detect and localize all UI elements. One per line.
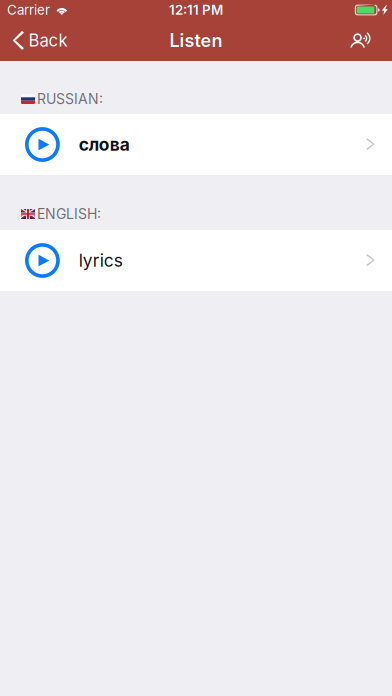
staticText: RUSSIAN: — [37, 90, 103, 107]
button[interactable]: Back — [0, 20, 77, 61]
button[interactable]: Speak — [336, 20, 392, 61]
staticText: 12:11 PM — [169, 2, 223, 18]
staticText: Back — [28, 30, 67, 51]
staticText: ENGLISH: — [37, 205, 101, 222]
staticText: слова — [79, 134, 130, 155]
staticText: Carrier — [7, 2, 50, 18]
staticText: lyrics — [79, 250, 123, 271]
staticText: Listen — [169, 30, 222, 51]
button[interactable]: lyrics — [0, 230, 392, 291]
button[interactable]: слова — [0, 114, 392, 175]
